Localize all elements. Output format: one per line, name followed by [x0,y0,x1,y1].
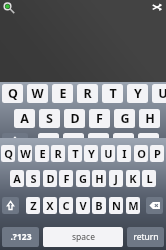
button[interactable]: B [138,133,159,152]
button[interactable]: S [39,109,60,128]
staticText: J [114,171,118,186]
staticText: T [109,85,117,102]
button[interactable]: return [127,227,164,247]
button[interactable]: C [88,133,109,152]
button[interactable]: Y [84,145,98,162]
staticText: U [104,146,113,161]
button[interactable]: B [92,197,106,214]
staticText: Z [45,134,53,151]
button[interactable]: I [117,145,131,162]
button[interactable]: Shift [2,197,19,214]
staticText: V [79,198,87,213]
button[interactable]: U [152,84,166,103]
button[interactable]: K [126,170,140,187]
button[interactable]: A [10,170,24,187]
staticText: X [69,134,78,151]
staticText: B [144,134,153,151]
button[interactable]: X [43,197,57,214]
staticText: Y [134,85,142,102]
staticText: S [46,110,53,127]
button[interactable]: J [109,170,123,187]
button[interactable]: C [59,197,73,214]
button[interactable]: D [43,170,57,187]
button[interactable]: O [134,145,148,162]
button[interactable]: W [18,145,32,162]
staticText: C [62,198,70,213]
button[interactable]: R [51,145,65,162]
button[interactable]: F [59,170,73,187]
button[interactable]: Shift [2,133,28,152]
button[interactable]: W [27,84,48,103]
button[interactable]: G [114,109,135,128]
staticText: V [119,134,128,151]
staticText: N [112,198,121,213]
staticText: K [129,171,137,186]
staticText: A [13,171,21,186]
staticText: space [72,231,95,243]
staticText: Z [30,198,37,213]
button[interactable]: T [102,84,123,103]
staticText: D [70,110,80,127]
button[interactable]: Backspace [146,197,163,214]
button[interactable]: Z [26,197,40,214]
staticText: Q [4,146,13,161]
staticText: C [94,134,103,151]
staticText: return [133,231,159,243]
staticText: M [128,198,139,213]
button[interactable]: A [14,109,35,128]
staticText: F [96,110,103,127]
staticText: W [20,146,31,161]
button[interactable]: T [68,145,82,162]
button[interactable]: V [76,197,90,214]
staticText: D [46,171,55,186]
button[interactable]: L [142,170,156,187]
button[interactable]: V [113,133,134,152]
button[interactable]: E [52,84,73,103]
staticText: S [30,171,37,186]
staticText: T [72,146,79,161]
button[interactable]: X [63,133,84,152]
button[interactable]: Zoom in [2,1,14,13]
button[interactable]: E [35,145,49,162]
staticText: E [39,146,46,161]
staticText: A [20,110,29,127]
button[interactable]: S [26,170,40,187]
staticText: H [95,171,104,186]
staticText: E [59,85,67,102]
staticText: R [54,146,62,161]
staticText: G [120,110,130,127]
button[interactable]: Y [127,84,148,103]
button[interactable]: F [89,109,110,128]
staticText: B [95,198,103,213]
staticText: F [63,171,70,186]
button[interactable]: M [126,197,140,214]
staticText: R [83,85,92,102]
staticText: H [145,110,155,127]
button[interactable]: G [76,170,90,187]
staticText: Q [8,85,18,102]
button[interactable]: Q [1,145,15,162]
staticText: W [31,85,44,102]
button[interactable]: Shuffle [151,2,163,12]
button[interactable]: R [77,84,98,103]
staticText: L [146,171,153,186]
staticText: Y [88,146,95,161]
staticText: O [137,146,146,161]
button[interactable]: space [43,227,123,247]
staticText: I [122,146,127,161]
button[interactable]: N [109,197,123,214]
staticText: .?123 [10,231,32,243]
staticText: X [46,198,54,213]
staticText: G [79,171,87,186]
staticText: P [154,146,161,161]
button[interactable]: .?123 [2,227,39,247]
button[interactable]: Z [38,133,59,152]
button[interactable]: Q [2,84,23,103]
button[interactable]: H [92,170,106,187]
staticText: U [158,85,166,102]
button[interactable]: P [150,145,164,162]
button[interactable]: H [139,109,160,128]
button[interactable]: U [101,145,115,162]
button[interactable]: D [64,109,85,128]
